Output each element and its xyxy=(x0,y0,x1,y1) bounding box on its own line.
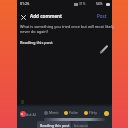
staticText: never do again? xyxy=(20,29,49,34)
staticText: because xyxy=(74,123,88,128)
button[interactable]: Polite xyxy=(63,109,79,117)
staticText: Reading this post xyxy=(40,123,70,128)
staticText: 01:26 xyxy=(20,1,30,6)
button[interactable]: Mimic xyxy=(43,109,58,117)
button[interactable]: Reading this post xyxy=(37,121,71,128)
button[interactable] xyxy=(19,13,28,22)
staticText: Add comment xyxy=(30,13,63,19)
staticText: 54% xyxy=(96,2,103,6)
staticText: 31% xyxy=(79,2,86,6)
staticText: What is something you tried once but wil… xyxy=(20,24,114,29)
staticText: Mimic xyxy=(49,110,59,115)
button[interactable]: Ask AI xyxy=(18,109,40,117)
button[interactable]: Flirty xyxy=(83,109,99,117)
staticText: Post xyxy=(97,13,107,19)
staticText: Flirty xyxy=(89,110,97,115)
staticText: Reading this post xyxy=(20,40,53,45)
button[interactable]: because xyxy=(72,121,88,128)
staticText: Ask AI xyxy=(26,112,36,117)
staticText: Polite xyxy=(69,110,78,115)
button[interactable]: Post xyxy=(94,11,110,20)
